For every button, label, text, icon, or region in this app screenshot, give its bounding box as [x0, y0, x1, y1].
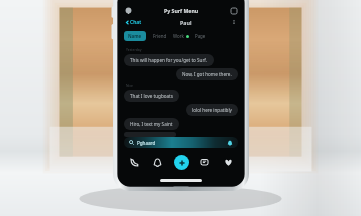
button[interactable]: Favourites	[221, 155, 236, 170]
button[interactable]: Now, I got home there.	[176, 68, 238, 80]
staticText: This will happen for you/get to Surf.	[130, 57, 208, 63]
other: Snapchat	[227, 140, 233, 146]
staticText: Py Surf Menu	[164, 7, 199, 14]
button[interactable]: That I love tugboats	[124, 90, 179, 102]
button[interactable]: Pghaard	[124, 137, 238, 148]
staticText: Chat	[130, 19, 142, 26]
staticText: Friend	[153, 33, 167, 39]
button[interactable]: Friend	[152, 31, 168, 41]
button[interactable]: Hiro, I text my Saint	[124, 118, 179, 130]
button[interactable]: Call	[127, 155, 142, 170]
button[interactable]: Messages	[197, 155, 212, 170]
staticText: Work	[173, 33, 184, 39]
staticText: That I love tugboats	[130, 93, 173, 99]
button[interactable]: Chat	[124, 19, 143, 26]
staticText: Nice	[126, 83, 133, 88]
staticText: Paul	[180, 19, 192, 26]
button[interactable]: More options	[230, 18, 238, 26]
staticText: Now, I got home there.	[182, 71, 232, 77]
staticText: Hiro, I text my Saint	[130, 121, 173, 127]
button[interactable]: Name	[124, 31, 146, 41]
staticText: Name	[128, 33, 142, 39]
staticText: lolol here inpatibly	[192, 107, 232, 113]
button[interactable]: This will happen for you/get to Surf.	[124, 54, 214, 66]
button[interactable]: New chat	[174, 155, 189, 170]
staticText: Page	[195, 33, 206, 39]
button[interactable]: Work	[173, 33, 189, 39]
button[interactable]: Snapchat	[150, 155, 165, 170]
button[interactable]: lolol here inpatibly	[186, 104, 238, 116]
button[interactable]: Page	[194, 31, 207, 41]
staticText: Yesterday	[126, 47, 142, 52]
staticText: Pghaard	[137, 140, 156, 146]
